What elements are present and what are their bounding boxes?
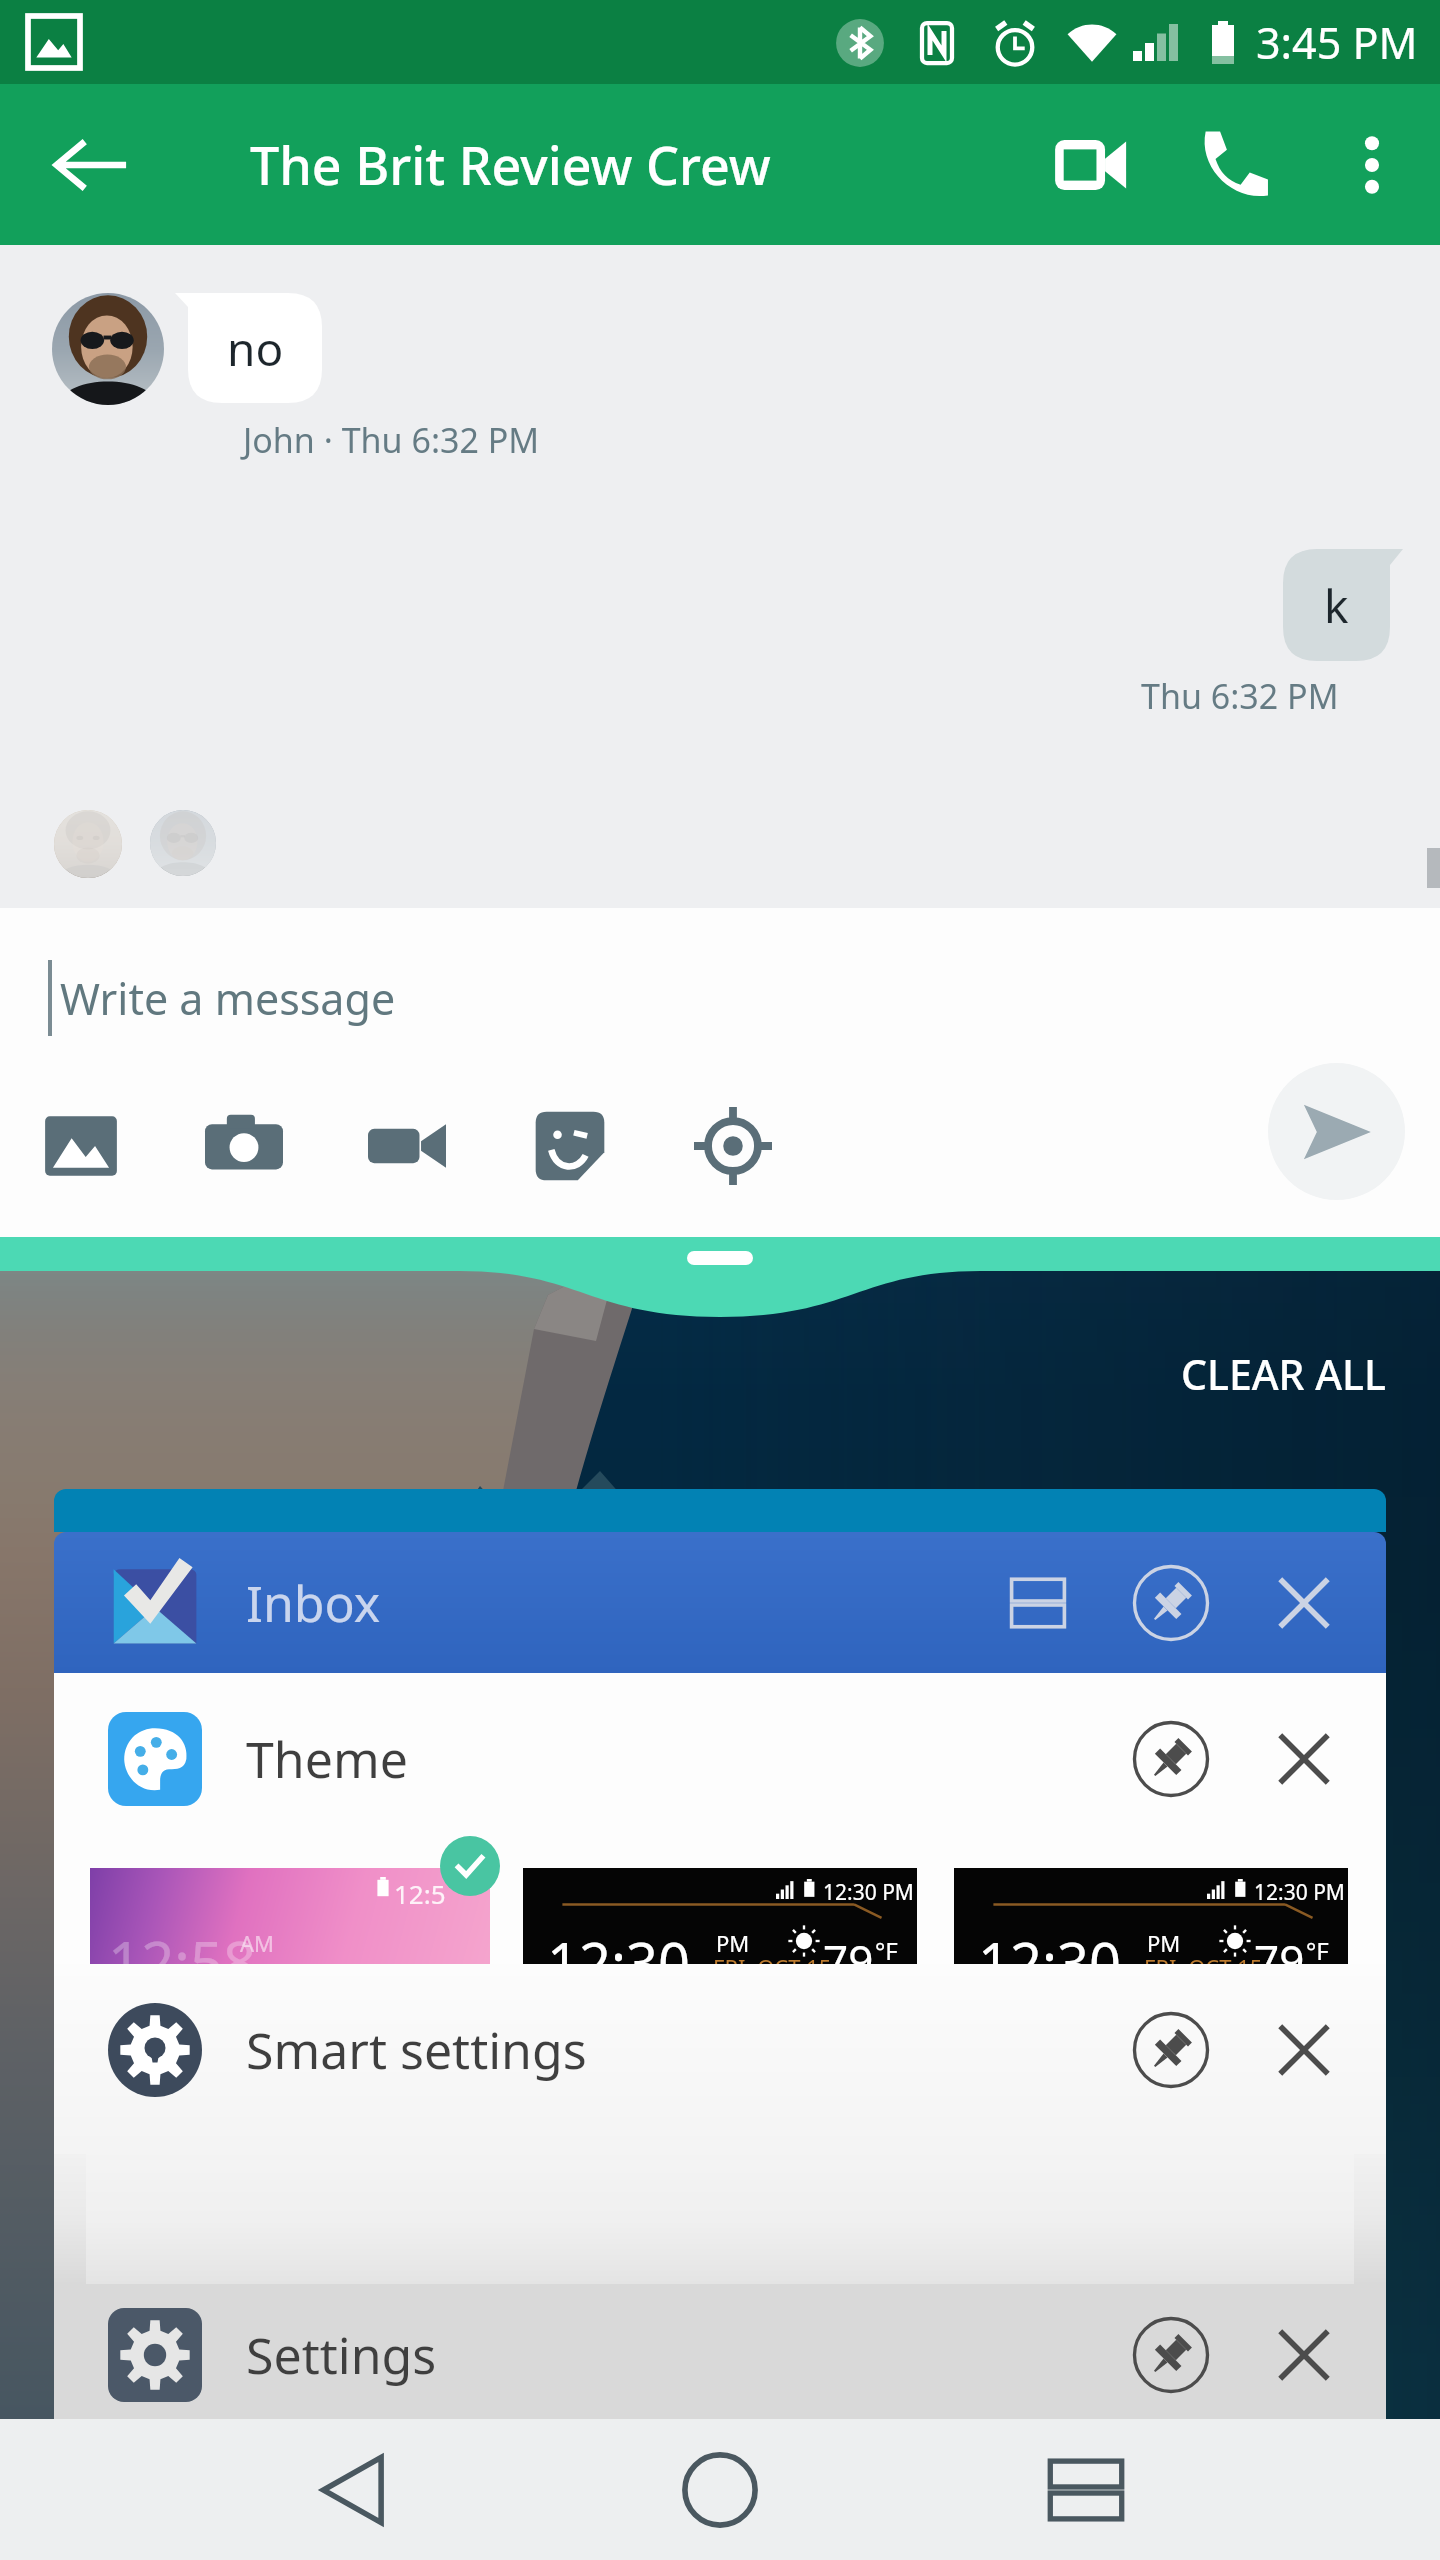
button[interactable]: Close (1258, 2004, 1350, 2096)
button[interactable]: Smart settings (54, 1964, 1386, 2284)
staticText: 12:5 (394, 1876, 446, 1911)
staticText: Smart settings (246, 2016, 587, 2084)
button[interactable]: Pin (1125, 2004, 1217, 2096)
button[interactable]: Record video (359, 1098, 455, 1194)
staticText: 12:30 PM (1254, 1878, 1345, 1907)
staticText: °F (1306, 1934, 1329, 1967)
staticText: PM (1147, 1928, 1181, 1958)
button[interactable]: Close (1258, 1557, 1350, 1649)
staticText: AM (240, 1928, 275, 1958)
button[interactable]: Close (1258, 1713, 1350, 1805)
staticText: Theme (246, 1725, 408, 1793)
button[interactable]: Pin (1125, 2309, 1217, 2401)
button[interactable]: Send (1268, 1063, 1405, 1200)
button[interactable]: Back (263, 2419, 443, 2560)
button[interactable]: Close (1258, 2309, 1350, 2401)
staticText: Settings (246, 2321, 437, 2389)
staticText: no (227, 317, 284, 380)
button[interactable]: CLEAR ALL (1181, 1346, 1386, 1402)
staticText: John · Thu 6:32 PM (243, 417, 540, 463)
button[interactable]: Take photo (196, 1098, 292, 1194)
staticText: 79 (1254, 1930, 1305, 1990)
staticText: 12:30 (547, 1924, 691, 2000)
staticText: 3:45 PM (1256, 13, 1418, 72)
button[interactable]: More options (1304, 84, 1440, 245)
button[interactable]: Settings (54, 2284, 1386, 2425)
button[interactable]: Pin (1125, 1557, 1217, 1649)
staticText: Inbox (246, 1569, 381, 1637)
button[interactable]: Call (1162, 84, 1304, 245)
staticText: PM (716, 1928, 750, 1958)
staticText: Write a message (60, 969, 396, 1028)
button[interactable]: Home (630, 2419, 810, 2560)
button[interactable]: Theme (54, 1673, 1386, 1964)
button[interactable]: Sticker (522, 1098, 618, 1194)
staticText: k (1324, 574, 1349, 637)
button[interactable]: Insert image (33, 1098, 129, 1194)
staticText: °F (875, 1934, 898, 1967)
button[interactable]: Location (685, 1098, 781, 1194)
staticText: 79 (823, 1930, 874, 1990)
button[interactable]: Inbox (54, 1532, 1386, 1673)
button[interactable]: Split screen (992, 1557, 1084, 1649)
button[interactable]: Video call (1020, 84, 1162, 245)
button[interactable]: Recent apps (996, 2419, 1176, 2560)
staticText: FRI, OCT 15 (1144, 1952, 1263, 1982)
staticText: 12:30 PM (823, 1878, 914, 1907)
staticText: FRI, OCT 15 (713, 1952, 832, 1982)
staticText: 12:30 (978, 1924, 1122, 2000)
staticText: Thu 6:32 PM (1141, 673, 1339, 719)
button[interactable]: Pin (1125, 1713, 1217, 1805)
staticText: 12:58 (108, 1922, 257, 2001)
button[interactable]: Back (0, 84, 182, 245)
staticText: The Brit Review Crew (250, 129, 771, 200)
